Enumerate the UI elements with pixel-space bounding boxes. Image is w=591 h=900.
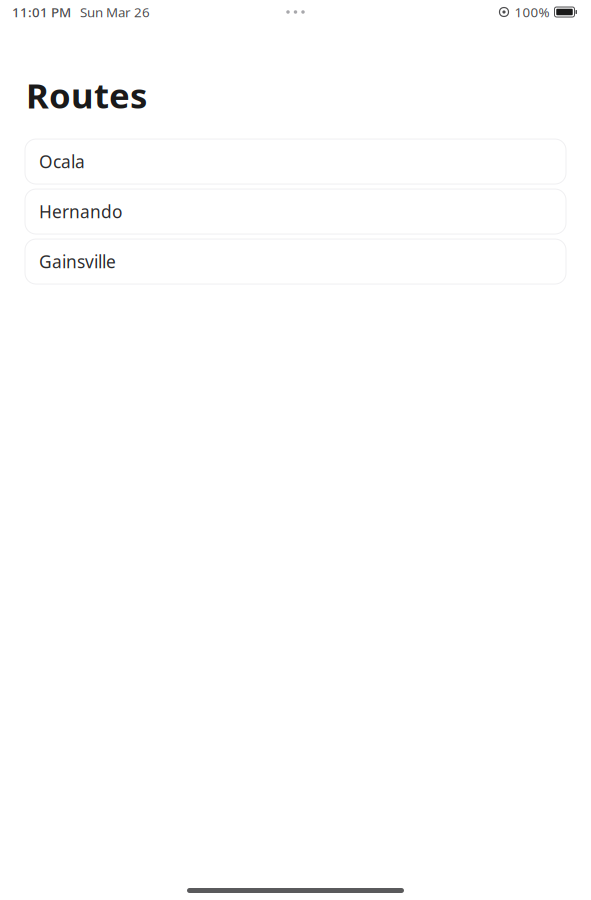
staticText: Sun Mar 26 [80,3,150,21]
staticText: Hernando [39,200,122,223]
button[interactable]: Ocala [25,139,566,184]
button[interactable]: Hernando [25,189,566,234]
button[interactable]: Gainsville [25,239,566,284]
staticText: Ocala [39,150,85,173]
staticText: 11:01 PM [12,3,71,21]
staticText: Routes [26,72,147,118]
staticText: 100% [514,3,549,21]
staticText: Gainsville [39,250,116,273]
